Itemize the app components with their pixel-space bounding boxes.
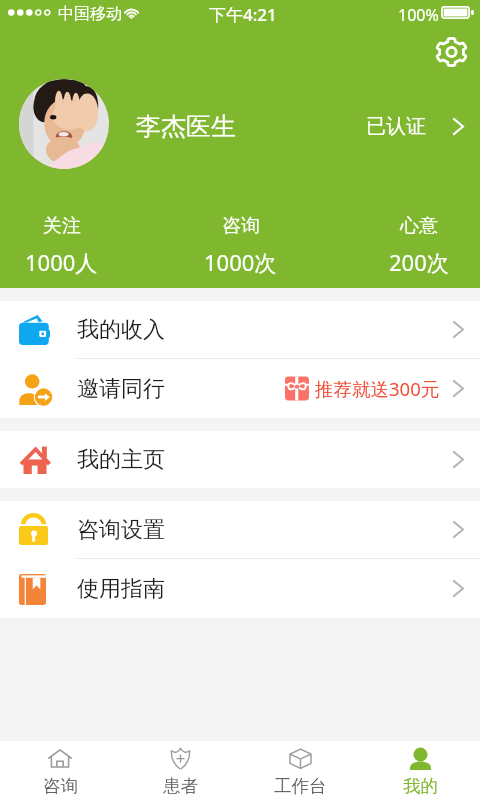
button[interactable]: 我的收入 bbox=[0, 301, 480, 359]
button[interactable]: 我的主页 bbox=[0, 431, 480, 488]
staticText: 已认证 bbox=[366, 114, 426, 139]
button[interactable]: 咨询 bbox=[0, 741, 120, 800]
staticText: 我的 bbox=[403, 775, 438, 797]
button[interactable]: 咨询设置 bbox=[0, 501, 480, 559]
button[interactable]: 工作台 bbox=[240, 741, 360, 800]
button[interactable]: Settings bbox=[429, 30, 473, 74]
button[interactable]: 关注 bbox=[1, 214, 121, 277]
button[interactable]: 邀请同行 bbox=[0, 359, 480, 418]
staticText: 患者 bbox=[163, 775, 198, 797]
button[interactable]: 我的 bbox=[360, 741, 480, 800]
button[interactable]: 使用指南 bbox=[0, 559, 480, 618]
staticText: 1000人 bbox=[25, 247, 98, 277]
staticText: 下午4:21 bbox=[209, 3, 277, 26]
staticText: 使用指南 bbox=[77, 575, 165, 603]
staticText: 我的主页 bbox=[77, 446, 165, 474]
staticText: 中国移动 bbox=[58, 4, 122, 24]
button[interactable]: 李杰医生 bbox=[0, 81, 480, 171]
button[interactable]: 患者 bbox=[120, 741, 240, 800]
staticText: 邀请同行 bbox=[77, 375, 165, 403]
staticText: 咨询 bbox=[222, 214, 260, 238]
button[interactable]: 心意 bbox=[359, 214, 479, 277]
staticText: 工作台 bbox=[274, 775, 327, 797]
staticText: 200次 bbox=[389, 247, 449, 277]
staticText: 1000次 bbox=[204, 247, 277, 277]
staticText: 关注 bbox=[43, 214, 81, 238]
staticText: 100% bbox=[398, 4, 439, 26]
button[interactable]: 咨询 bbox=[180, 214, 300, 277]
staticText: 咨询 bbox=[43, 775, 78, 797]
staticText: 咨询设置 bbox=[77, 516, 165, 544]
staticText: 我的收入 bbox=[77, 316, 165, 344]
staticText: 心意 bbox=[400, 214, 438, 238]
staticText: 推荐就送300元 bbox=[315, 376, 440, 401]
staticText: 李杰医生 bbox=[136, 111, 236, 142]
